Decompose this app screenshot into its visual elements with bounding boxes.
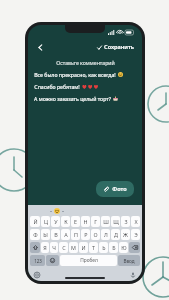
staticText: Х <box>134 218 138 225</box>
button[interactable]: Ю <box>119 242 128 253</box>
button[interactable]: И <box>79 242 88 253</box>
button[interactable]: Я <box>41 242 49 253</box>
staticText: Ш <box>103 218 109 225</box>
button[interactable]: Д <box>111 229 120 240</box>
staticText: Ввод <box>123 258 135 264</box>
staticText: Пробел <box>80 257 98 264</box>
staticText: Й <box>33 218 38 225</box>
staticText: Т <box>92 244 95 251</box>
staticText: Г <box>94 218 97 225</box>
staticText: Спасибо ребятам! <box>34 83 80 90</box>
button[interactable]: М <box>69 242 78 253</box>
button[interactable]: Л <box>101 229 110 240</box>
button[interactable]: Сохранить <box>95 42 136 52</box>
button[interactable]: Пробел <box>60 255 117 266</box>
staticText: П <box>74 231 78 238</box>
staticText: Б <box>112 244 116 251</box>
button[interactable]: З <box>121 216 130 227</box>
button[interactable]: Ь <box>99 242 108 253</box>
staticText: З <box>124 218 128 225</box>
staticText: Ж <box>123 231 128 238</box>
button[interactable]: Р <box>81 229 90 240</box>
staticText: И <box>81 244 86 251</box>
staticText: А <box>64 231 68 238</box>
staticText: Н <box>83 218 88 225</box>
button[interactable]: Ж <box>121 229 130 240</box>
button[interactable]: Х <box>131 216 140 227</box>
button[interactable]: Ы <box>41 229 50 240</box>
staticText: Е <box>74 218 77 225</box>
button[interactable]: Н <box>81 216 90 227</box>
button[interactable]: Ц <box>41 216 50 227</box>
button[interactable]: 123 <box>30 255 45 266</box>
button[interactable]: В <box>51 229 60 240</box>
button[interactable]: У <box>51 216 60 227</box>
button[interactable]: С <box>59 242 68 253</box>
staticText: Оставьте комментарий <box>56 59 115 66</box>
staticText: Ф <box>33 231 38 238</box>
button[interactable]: А <box>61 229 70 240</box>
button[interactable]: Е <box>71 216 80 227</box>
staticText: У <box>54 218 58 225</box>
staticText: Д <box>114 231 118 238</box>
staticText: Сохранить <box>104 43 134 51</box>
staticText: К <box>64 218 68 225</box>
button[interactable]: Change language <box>33 271 40 278</box>
button[interactable]: Г <box>91 216 100 227</box>
button[interactable]: П <box>71 229 80 240</box>
staticText: О <box>93 231 98 238</box>
staticText: Ц <box>44 218 48 225</box>
button[interactable]: К <box>61 216 70 227</box>
button[interactable]: Й <box>30 216 40 227</box>
staticText: В <box>54 231 58 238</box>
button[interactable]: Voice input <box>129 271 136 278</box>
button[interactable]: Щ <box>111 216 120 227</box>
staticText: Ч <box>52 244 56 251</box>
button[interactable]: Ш <box>101 216 110 227</box>
staticText: Р <box>84 231 88 238</box>
staticText: Ю <box>121 244 127 251</box>
button[interactable]: Ввод <box>118 255 140 266</box>
button[interactable]: Э <box>131 229 140 240</box>
button[interactable]: О <box>91 229 100 240</box>
button[interactable]: Emoji <box>46 255 59 266</box>
button[interactable]: Т <box>89 242 98 253</box>
button[interactable]: Фото <box>96 181 134 197</box>
button[interactable]: Ф <box>30 229 40 240</box>
staticText: М <box>71 244 76 251</box>
staticText: Э <box>134 231 138 238</box>
staticText: Л <box>104 231 108 238</box>
button[interactable]: Ч <box>50 242 58 253</box>
button[interactable]: Б <box>109 242 118 253</box>
staticText: С <box>62 244 66 251</box>
staticText: Я <box>43 244 47 251</box>
staticText: Ы <box>43 231 48 238</box>
staticText: Щ <box>113 218 119 225</box>
button[interactable]: Back <box>34 41 46 53</box>
staticText: А можно заказать целый торт? <box>34 95 111 102</box>
staticText: Все было прекрасно, как всегда! <box>34 71 116 78</box>
button[interactable]: Shift <box>30 242 40 253</box>
staticText: 123 <box>34 258 42 264</box>
staticText: Фото <box>112 185 127 193</box>
staticText: Ь <box>102 244 106 251</box>
button[interactable]: Backspace <box>129 242 140 253</box>
